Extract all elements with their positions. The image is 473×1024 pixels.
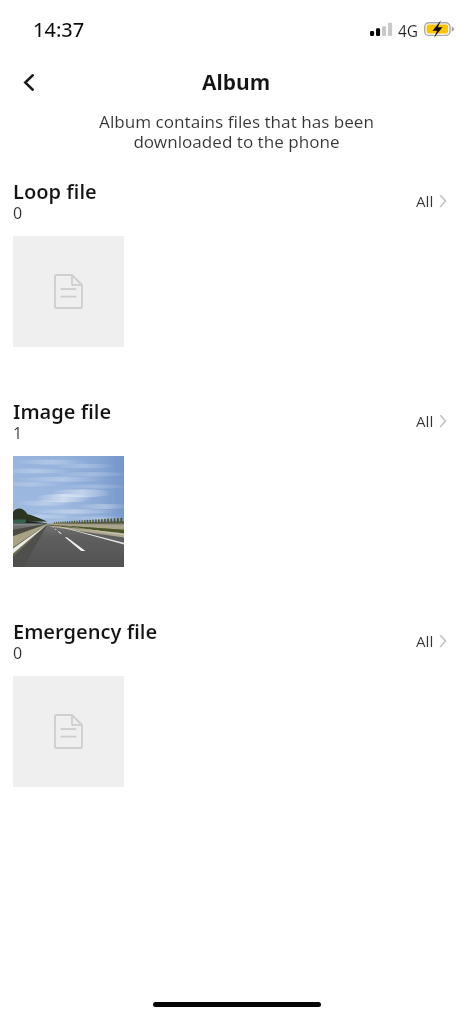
button[interactable]: All [403, 180, 473, 220]
staticText: Album [202, 68, 271, 97]
button[interactable] [13, 676, 124, 787]
button[interactable]: All [403, 400, 473, 440]
staticText: Album contains files that has been downl… [88, 110, 385, 153]
staticText: 0 [13, 202, 23, 220]
button[interactable]: All [403, 620, 473, 660]
button[interactable] [13, 236, 124, 347]
staticText: 1 [13, 422, 23, 440]
staticText: Image file [13, 398, 112, 424]
staticText: Loop file [13, 178, 97, 204]
staticText: 4G [398, 20, 419, 41]
staticText: 14:37 [33, 16, 85, 43]
staticText: All [416, 411, 434, 431]
staticText: All [416, 631, 434, 651]
staticText: All [416, 191, 434, 211]
staticText: Emergency file [13, 618, 158, 644]
button[interactable] [13, 456, 124, 567]
staticText: 0 [13, 642, 23, 660]
button[interactable]: Back [0, 60, 58, 104]
